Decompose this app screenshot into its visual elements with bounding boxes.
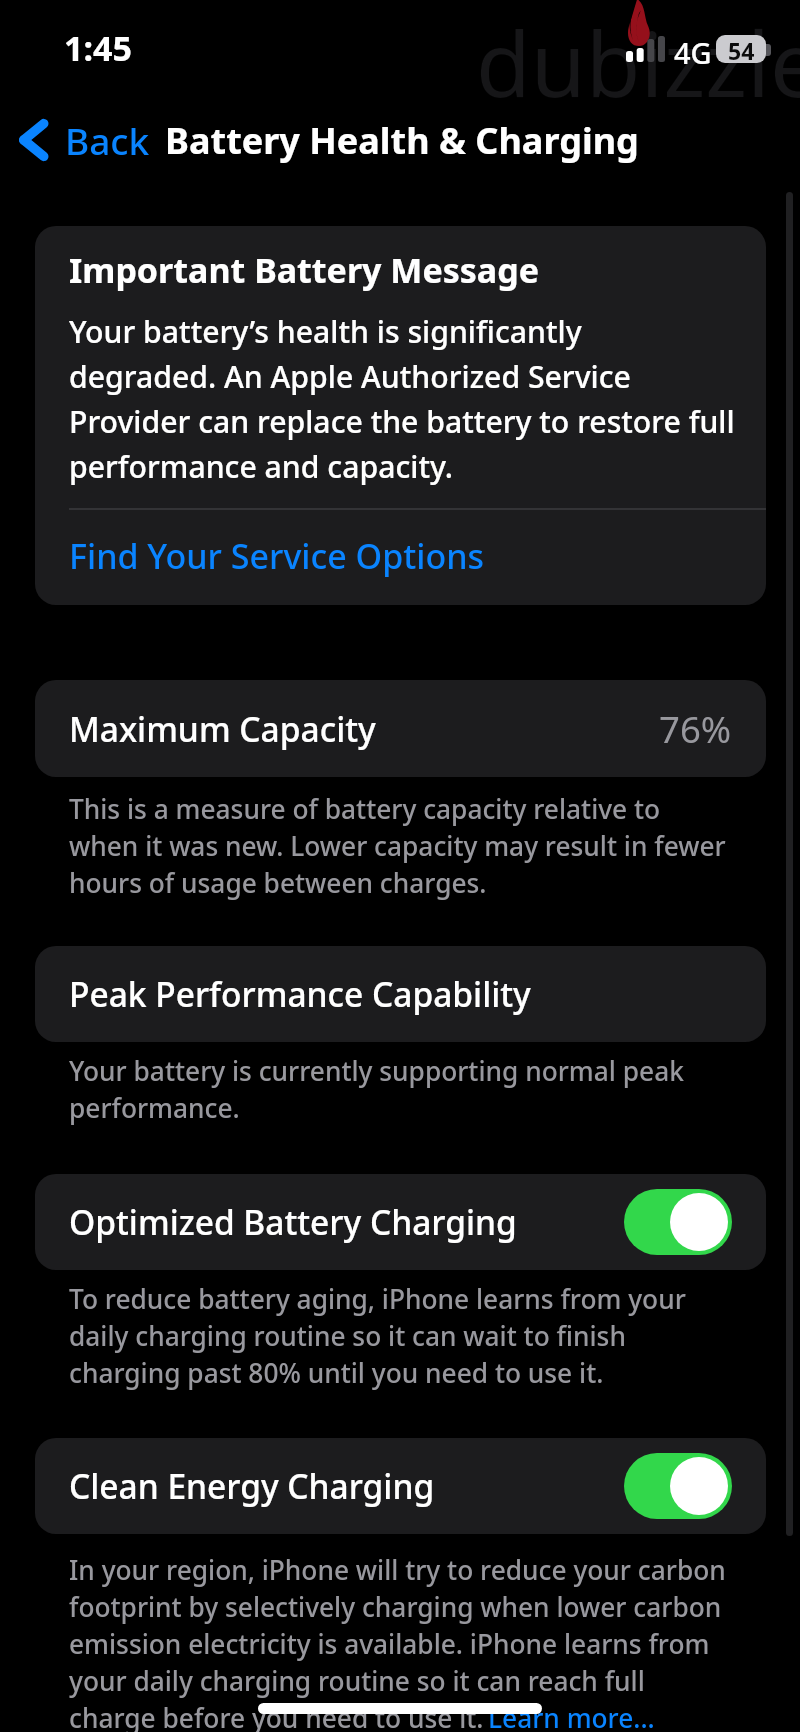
staticText: Your battery’s health is significantly d… xyxy=(69,311,735,487)
staticText: Maximum Capacity xyxy=(69,706,376,752)
button[interactable]: Toggle Clean Energy Charging xyxy=(624,1453,732,1519)
staticText: Important Battery Message xyxy=(69,247,540,293)
button[interactable]: Learn more... xyxy=(488,1700,655,1732)
staticText: 1:45 xyxy=(64,25,132,71)
button[interactable]: Toggle Optimized Battery Charging xyxy=(624,1189,732,1255)
staticText: Learn more... xyxy=(488,1700,655,1732)
button[interactable]: Optimized Battery Charging xyxy=(35,1174,766,1270)
staticText: In your region, iPhone will try to reduc… xyxy=(69,1552,726,1732)
staticText: Find Your Service Options xyxy=(69,533,485,579)
button[interactable]: Find Your Service Options xyxy=(35,510,766,605)
staticText: This is a measure of battery capacity re… xyxy=(69,791,726,901)
staticText: Battery Health & Charging xyxy=(165,116,639,165)
staticText: Peak Performance Capability xyxy=(69,971,531,1017)
staticText: 54 xyxy=(728,35,755,63)
button[interactable]: Clean Energy Charging xyxy=(35,1438,766,1534)
staticText: 76% xyxy=(659,704,732,754)
staticText: Optimized Battery Charging xyxy=(69,1199,517,1245)
staticText: Your battery is currently supporting nor… xyxy=(69,1053,684,1126)
button[interactable]: Maximum Capacity xyxy=(35,680,766,777)
staticText: Back xyxy=(65,115,150,165)
staticText: 4G xyxy=(674,33,712,72)
button[interactable]: Back xyxy=(12,109,156,171)
staticText: To reduce battery aging, iPhone learns f… xyxy=(69,1281,686,1391)
staticText: Clean Energy Charging xyxy=(69,1463,435,1509)
button[interactable]: Peak Performance Capability xyxy=(35,946,766,1042)
staticText: dubizzle xyxy=(476,2,800,123)
